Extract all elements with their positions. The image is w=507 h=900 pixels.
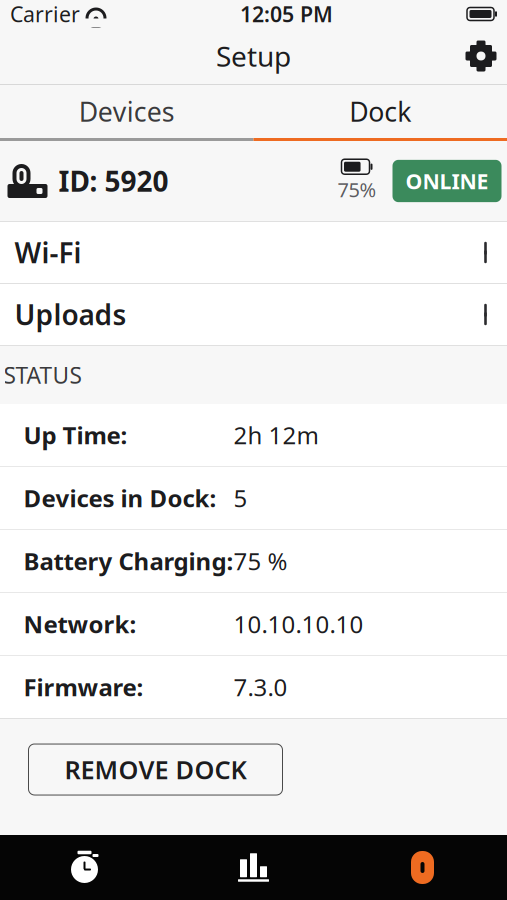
button[interactable]: Statistics	[169, 835, 338, 900]
button[interactable]: Wi-Fi	[0, 222, 507, 283]
staticText: Network:	[23, 608, 136, 640]
button[interactable]: Uploads	[0, 284, 507, 345]
staticText: Wi-Fi	[14, 234, 81, 271]
staticText: Carrier	[10, 0, 80, 28]
button[interactable]: Settings	[455, 28, 507, 84]
button[interactable]: Devices	[0, 85, 253, 138]
staticText: Battery Charging:	[23, 545, 233, 577]
staticText: Dock	[349, 94, 411, 129]
staticText: 75 %	[233, 545, 287, 577]
staticText: ID: 5920	[58, 162, 168, 200]
staticText: Setup	[216, 37, 291, 75]
button[interactable]: Dock	[253, 85, 507, 138]
button[interactable]: Devices	[338, 835, 507, 900]
staticText: REMOVE DOCK	[64, 753, 246, 786]
staticText: Firmware:	[23, 671, 143, 703]
staticText: 10.10.10.10	[233, 608, 363, 640]
button[interactable]: Timer	[0, 835, 169, 900]
staticText: 2h 12m	[233, 419, 318, 451]
staticText: 5	[233, 482, 247, 514]
staticText: 7.3.0	[233, 671, 287, 703]
staticText: STATUS	[3, 360, 81, 390]
staticText: Uploads	[14, 296, 126, 333]
staticText: 75%	[337, 176, 376, 203]
button[interactable]: REMOVE DOCK	[28, 744, 282, 795]
staticText: ONLINE	[405, 167, 488, 195]
staticText: Devices in Dock:	[23, 482, 216, 514]
staticText: Devices	[79, 94, 175, 129]
staticText: 12:05 PM	[240, 0, 333, 28]
staticText: Up Time:	[23, 419, 127, 451]
